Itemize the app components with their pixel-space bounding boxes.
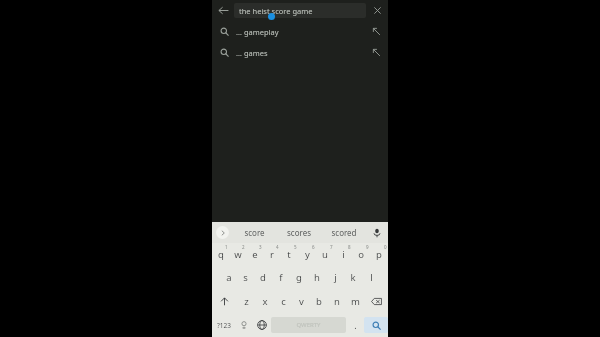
staticText: y: [305, 248, 310, 261]
staticText: 9: [366, 244, 369, 250]
button[interactable]: x: [256, 289, 274, 313]
staticText: d: [260, 271, 266, 284]
button[interactable]: … games: [212, 42, 388, 63]
staticText: score: [244, 227, 265, 238]
staticText: 0: [384, 244, 387, 250]
button[interactable]: o: [352, 243, 370, 266]
staticText: 1: [225, 244, 228, 250]
staticText: v: [299, 295, 304, 308]
staticText: k: [350, 271, 356, 284]
staticText: QWERTY: [296, 321, 321, 329]
button[interactable]: scores: [276, 222, 321, 243]
button[interactable]: scored: [321, 222, 366, 243]
button[interactable]: y: [298, 243, 316, 266]
button[interactable]: … gameplay: [212, 21, 388, 42]
button[interactable]: Emoji: [235, 313, 253, 337]
staticText: c: [281, 295, 286, 308]
button[interactable]: w: [229, 243, 246, 266]
staticText: ?123: [217, 321, 231, 330]
button[interactable]: a: [220, 266, 237, 289]
staticText: u: [322, 248, 328, 261]
button[interactable]: r: [263, 243, 280, 266]
staticText: 2: [242, 244, 245, 250]
button[interactable]: Back: [212, 0, 234, 21]
staticText: … gameplay: [236, 27, 364, 37]
staticText: 3: [259, 244, 262, 250]
button[interactable]: m: [346, 289, 364, 313]
staticText: … games: [236, 48, 364, 58]
button[interactable]: Insert suggestion: [364, 27, 388, 36]
staticText: n: [334, 295, 340, 308]
button[interactable]: i: [334, 243, 352, 266]
button[interactable]: s: [237, 266, 254, 289]
button[interactable]: b: [310, 289, 328, 313]
button[interactable]: g: [290, 266, 308, 289]
button[interactable]: p: [370, 243, 388, 266]
button[interactable]: e: [246, 243, 263, 266]
staticText: 4: [276, 244, 279, 250]
staticText: s: [243, 271, 248, 284]
button[interactable]: Insert suggestion: [364, 48, 388, 57]
button[interactable]: .: [346, 313, 364, 337]
button[interactable]: v: [292, 289, 310, 313]
staticText: x: [262, 295, 268, 308]
button[interactable]: Voice input: [366, 222, 388, 243]
button[interactable]: Expand: [212, 222, 232, 243]
staticText: the heist score game: [239, 6, 313, 16]
staticText: z: [244, 295, 249, 308]
button[interactable]: Change language: [253, 313, 271, 337]
staticText: o: [358, 248, 364, 261]
staticText: m: [351, 295, 360, 308]
staticText: a: [226, 271, 232, 284]
staticText: 8: [348, 244, 351, 250]
button[interactable]: n: [328, 289, 346, 313]
staticText: scores: [287, 227, 311, 238]
button[interactable]: u: [316, 243, 334, 266]
staticText: 5: [294, 244, 297, 250]
button[interactable]: d: [254, 266, 272, 289]
button[interactable]: t: [280, 243, 298, 266]
staticText: p: [376, 248, 382, 261]
staticText: scored: [331, 227, 357, 238]
staticText: w: [234, 248, 242, 261]
button[interactable]: Backspace: [364, 289, 388, 313]
button[interactable]: QWERTY: [271, 317, 346, 333]
staticText: 7: [330, 244, 333, 250]
button[interactable]: ?123: [212, 313, 235, 337]
button[interactable]: l: [362, 266, 380, 289]
button[interactable]: k: [344, 266, 362, 289]
button[interactable]: z: [237, 289, 256, 313]
staticText: .: [354, 319, 357, 331]
button[interactable]: q: [212, 243, 229, 266]
button[interactable]: Search: [364, 317, 388, 333]
staticText: l: [370, 271, 373, 284]
staticText: g: [296, 271, 302, 284]
staticText: 6: [312, 244, 315, 250]
staticText: q: [218, 248, 224, 261]
staticText: t: [287, 248, 291, 261]
button[interactable]: f: [272, 266, 290, 289]
staticText: f: [279, 271, 283, 284]
button[interactable]: Clear: [366, 0, 388, 21]
button[interactable]: score: [232, 222, 276, 243]
button[interactable]: the heist score game: [234, 3, 366, 18]
staticText: r: [270, 248, 274, 261]
staticText: e: [252, 248, 258, 261]
button[interactable]: j: [326, 266, 344, 289]
button[interactable]: Shift: [212, 289, 237, 313]
staticText: h: [314, 271, 320, 284]
button[interactable]: h: [308, 266, 326, 289]
staticText: j: [334, 271, 337, 284]
button[interactable]: c: [274, 289, 292, 313]
staticText: b: [316, 295, 322, 308]
staticText: i: [342, 248, 345, 261]
